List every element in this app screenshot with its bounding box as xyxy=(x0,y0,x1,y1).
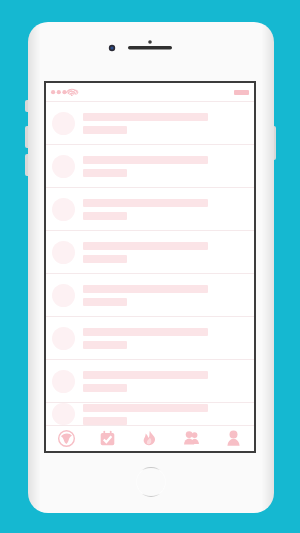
other: Volume down xyxy=(25,154,30,176)
button[interactable]: Profile xyxy=(212,426,254,451)
button[interactable]: Home xyxy=(137,468,165,496)
button[interactable]: Events xyxy=(87,426,128,451)
button[interactable] xyxy=(46,144,254,187)
other: Silent switch xyxy=(25,100,30,112)
button[interactable] xyxy=(46,187,254,230)
button[interactable] xyxy=(46,273,254,316)
button[interactable]: Trending xyxy=(128,426,170,451)
button[interactable] xyxy=(46,316,254,359)
button[interactable]: Friends xyxy=(170,426,212,451)
button[interactable] xyxy=(46,230,254,273)
button[interactable] xyxy=(46,359,254,402)
button[interactable] xyxy=(46,101,254,144)
other: Volume up xyxy=(25,126,30,148)
button[interactable]: Discover xyxy=(46,426,87,451)
button[interactable] xyxy=(46,402,254,425)
other: Power xyxy=(271,126,276,160)
